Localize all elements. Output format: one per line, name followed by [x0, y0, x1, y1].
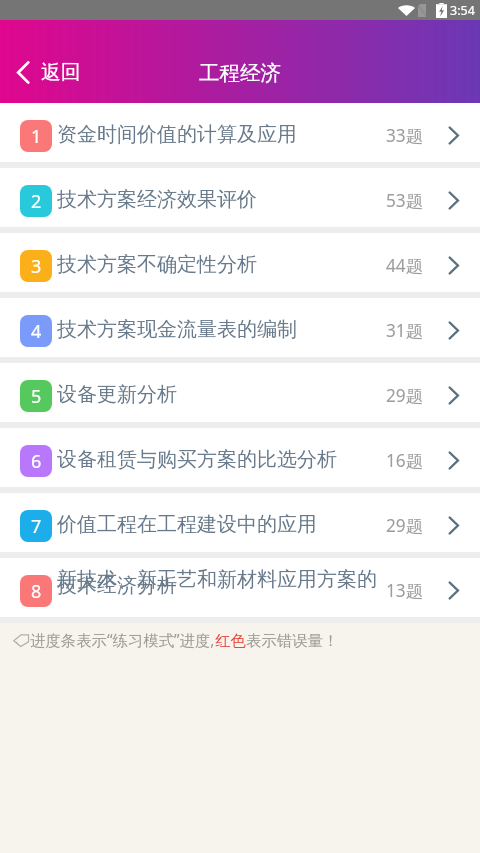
staticText: 16题 [386, 449, 423, 472]
staticText: 技术方案现金流量表的编制 [57, 317, 297, 342]
staticText: 31题 [386, 319, 423, 342]
staticText: 29题 [386, 384, 423, 407]
other: 进入 [448, 192, 459, 209]
button[interactable]: 1 [0, 103, 480, 162]
staticText: 53题 [386, 189, 423, 212]
staticText: 33题 [386, 124, 423, 147]
other: 进入 [448, 127, 459, 144]
staticText: 工程经济 [199, 60, 281, 86]
staticText: 新技术、新工艺和新材料应用方案的 技术经济分析 [57, 567, 377, 598]
staticText: 红色 [215, 631, 246, 650]
other: 进入 [448, 582, 459, 599]
other: 进入 [448, 387, 459, 404]
staticText: 2 [31, 189, 42, 214]
staticText: 表示错误量！ [246, 631, 339, 650]
other: 进入 [448, 452, 459, 469]
button[interactable]: 6 [0, 428, 480, 487]
button[interactable]: 5 [0, 363, 480, 422]
staticText: 设备更新分析 [57, 382, 177, 407]
staticText: 1 [31, 124, 42, 149]
staticText: 13题 [386, 579, 423, 602]
staticText: 价值工程在工程建设中的应用 [57, 512, 317, 537]
button[interactable]: 2 [0, 168, 480, 227]
other: 进入 [448, 322, 459, 339]
staticText: 技术方案不确定性分析 [57, 252, 257, 277]
button[interactable]: 3 [0, 233, 480, 292]
staticText: 返回 [41, 60, 81, 85]
button[interactable]: 8 [0, 558, 480, 617]
staticText: 29题 [386, 514, 423, 537]
staticText: 3 [31, 254, 42, 279]
staticText: 设备租赁与购买方案的比选分析 [57, 447, 337, 472]
staticText: 4 [31, 319, 42, 344]
staticText: 5 [31, 384, 42, 409]
staticText: 进度条表示“练习模式”进度, [30, 630, 215, 651]
staticText: 7 [31, 514, 42, 539]
staticText: 8 [31, 579, 42, 604]
staticText: 44题 [386, 254, 423, 277]
staticText: 3:54 [450, 2, 475, 19]
staticText: 资金时间价值的计算及应用 [57, 122, 297, 147]
staticText: 技术方案经济效果评价 [57, 187, 257, 212]
button[interactable]: 4 [0, 298, 480, 357]
other: 进入 [448, 517, 459, 534]
other: 进入 [448, 257, 459, 274]
button[interactable]: 7 [0, 493, 480, 552]
staticText: 6 [31, 449, 42, 474]
button[interactable]: 返回 [16, 60, 81, 85]
